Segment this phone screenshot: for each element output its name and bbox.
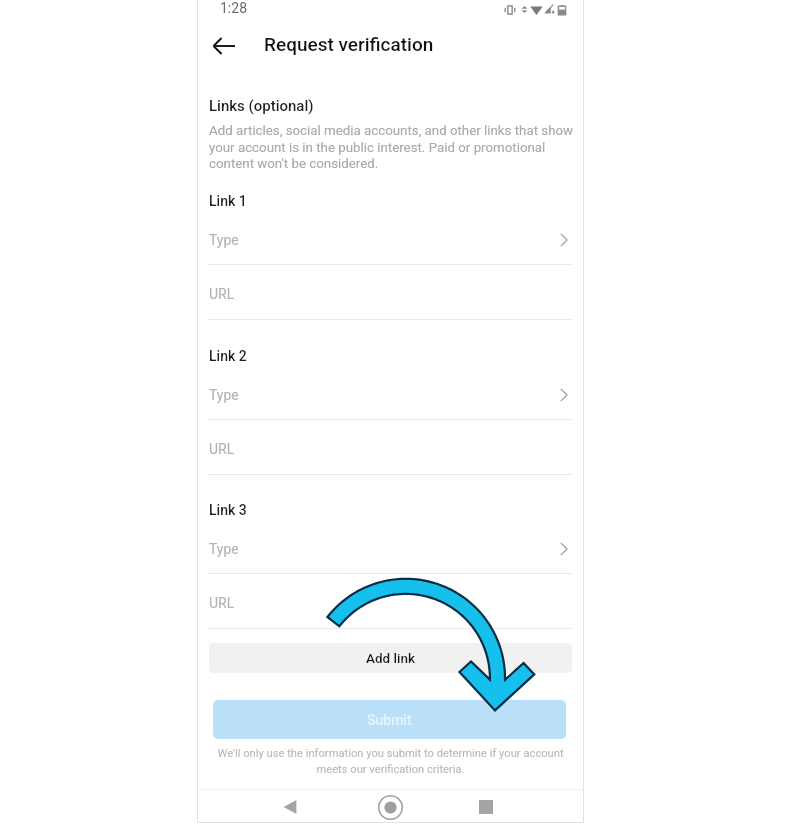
staticText: URL [209, 595, 235, 611]
button[interactable]: Type [209, 376, 570, 414]
staticText: Request verification [264, 33, 434, 55]
button[interactable]: Submit [213, 700, 566, 739]
staticText: URL [209, 286, 235, 302]
button[interactable]: Type [209, 221, 570, 259]
staticText: 1:28 [220, 0, 247, 16]
button[interactable]: Recents [469, 790, 503, 824]
staticText: URL [209, 441, 235, 457]
staticText: We'll only use the information you submi… [210, 747, 571, 776]
staticText: Submit [367, 712, 412, 728]
button[interactable]: Add link [209, 643, 572, 673]
button[interactable]: Home [373, 790, 407, 824]
staticText: Add articles, social media accounts, and… [209, 123, 589, 171]
staticText: Type [209, 541, 554, 557]
button[interactable]: Back [273, 790, 307, 824]
staticText: Link 2 [209, 348, 247, 364]
staticText: Type [209, 387, 554, 403]
staticText: Link 3 [209, 502, 247, 518]
staticText: Link 1 [209, 193, 247, 209]
staticText: Links (optional) [209, 97, 314, 115]
button[interactable]: Type [209, 530, 570, 568]
staticText: Type [209, 232, 554, 248]
staticText: Add link [366, 650, 415, 666]
button[interactable]: Back [205, 27, 243, 65]
